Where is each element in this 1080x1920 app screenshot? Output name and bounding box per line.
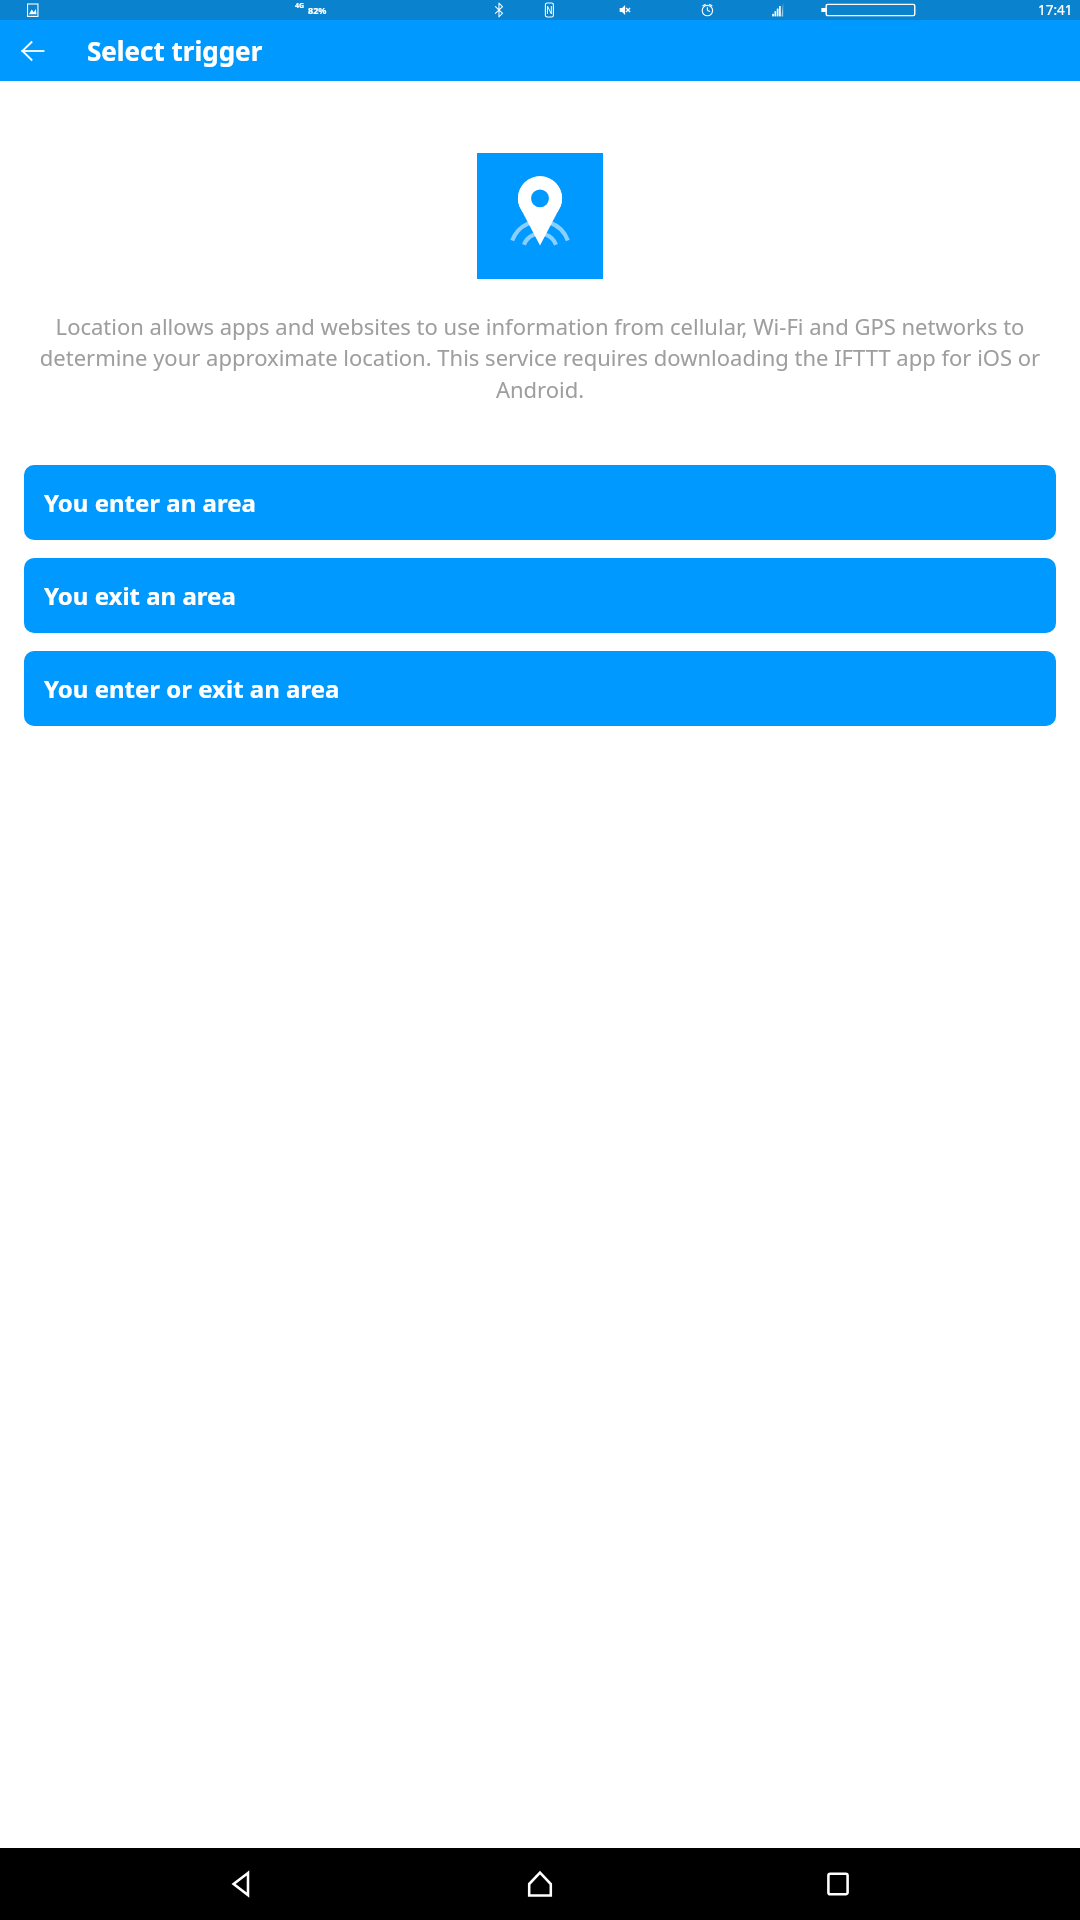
- staticText: You exit an area: [44, 579, 236, 612]
- button[interactable]: Back: [11, 29, 55, 73]
- staticText: You enter an area: [44, 486, 256, 519]
- button[interactable]: Back: [218, 1860, 266, 1908]
- staticText: You enter or exit an area: [44, 672, 340, 705]
- button[interactable]: You enter or exit an area: [24, 651, 1056, 726]
- button[interactable]: Home: [516, 1860, 564, 1908]
- button[interactable]: You enter an area: [24, 465, 1056, 540]
- staticText: 4G: [295, 1, 305, 11]
- staticText: Select trigger: [87, 33, 263, 68]
- staticText: 17:41: [1038, 1, 1073, 19]
- staticText: 82%: [308, 4, 327, 16]
- button[interactable]: Recents: [814, 1860, 862, 1908]
- staticText: Location allows apps and websites to use…: [22, 311, 1058, 405]
- button[interactable]: You exit an area: [24, 558, 1056, 633]
